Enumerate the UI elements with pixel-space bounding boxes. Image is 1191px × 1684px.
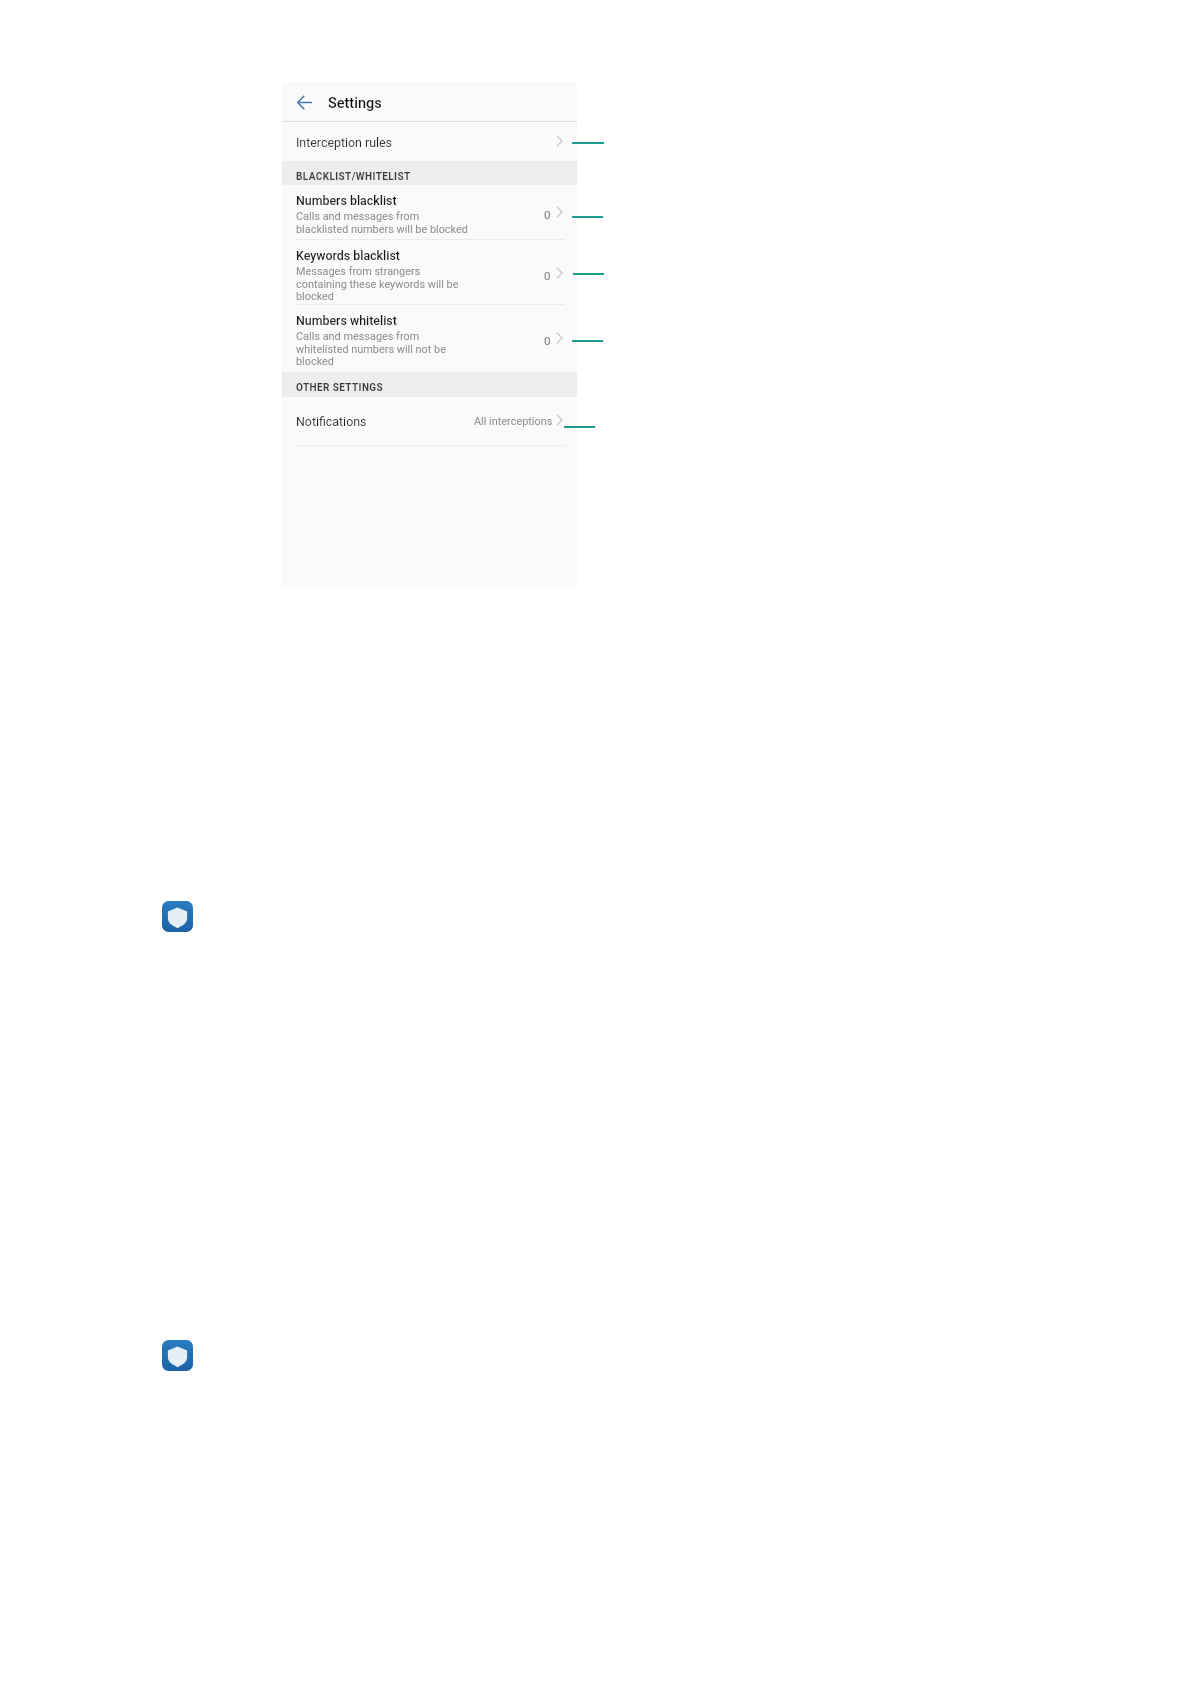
- staticText: Messages from strangers containing these…: [296, 265, 459, 302]
- button[interactable]: Notifications: [282, 397, 577, 446]
- staticText: Notifications: [296, 414, 367, 429]
- staticText: Numbers blacklist: [296, 193, 397, 208]
- button[interactable]: Keywords blacklist: [282, 240, 577, 305]
- button[interactable]: Numbers whitelist: [282, 305, 577, 372]
- button[interactable]: Back: [292, 90, 316, 114]
- staticText: 0: [544, 208, 551, 221]
- staticText: Calls and messages from blacklisted numb…: [296, 210, 468, 235]
- staticText: All interceptions: [474, 415, 553, 428]
- staticText: 0: [544, 334, 551, 347]
- button[interactable]: Interception rules: [282, 121, 577, 161]
- staticText: Keywords blacklist: [296, 248, 400, 263]
- staticText: OTHER SETTINGS: [296, 382, 384, 394]
- staticText: 0: [544, 269, 551, 282]
- button[interactable]: Phone Manager: [162, 1340, 193, 1371]
- button[interactable]: Phone Manager: [162, 901, 193, 932]
- staticText: Calls and messages from whitelisted numb…: [296, 330, 446, 367]
- staticText: Numbers whitelist: [296, 313, 397, 328]
- staticText: Interception rules: [296, 135, 392, 150]
- staticText: BLACKLIST/WHITELIST: [296, 171, 411, 183]
- button[interactable]: Numbers blacklist: [282, 185, 577, 240]
- staticText: Settings: [328, 95, 382, 112]
